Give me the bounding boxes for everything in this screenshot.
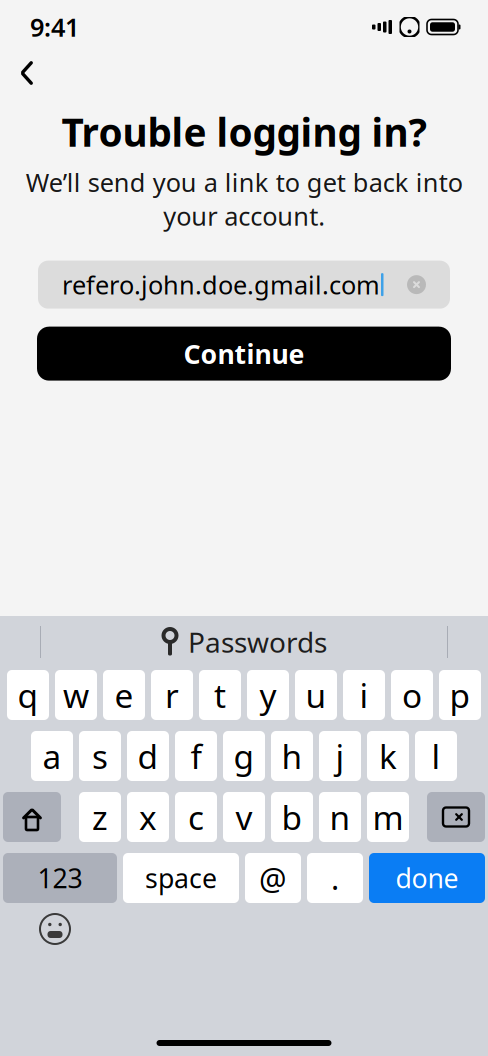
- staticText: x: [139, 795, 157, 839]
- button[interactable]: r: [151, 670, 193, 720]
- staticText: r: [165, 673, 179, 717]
- button[interactable]: i: [343, 670, 385, 720]
- staticText: q: [17, 673, 38, 717]
- button[interactable]: .: [307, 853, 363, 903]
- staticText: o: [402, 673, 422, 717]
- staticText: s: [92, 734, 108, 778]
- button[interactable]: y: [247, 670, 289, 720]
- button[interactable]: l: [415, 731, 457, 781]
- button[interactable]: b: [271, 792, 313, 842]
- staticText: l: [431, 734, 440, 778]
- staticText: .: [331, 858, 339, 898]
- staticText: t: [214, 673, 226, 717]
- button[interactable]: z: [79, 792, 121, 842]
- button[interactable]: h: [271, 731, 313, 781]
- staticText: h: [281, 734, 302, 778]
- staticText: 9:41: [30, 10, 79, 44]
- staticText: done: [395, 860, 458, 896]
- button[interactable]: d: [127, 731, 169, 781]
- button[interactable]: Passwords: [149, 622, 339, 662]
- button[interactable]: o: [391, 670, 433, 720]
- staticText: e: [114, 673, 133, 717]
- staticText: @: [259, 858, 287, 898]
- button[interactable]: Continue: [37, 327, 451, 381]
- staticText: m: [372, 795, 403, 839]
- button[interactable]: p: [439, 670, 481, 720]
- staticText: j: [335, 734, 344, 778]
- button[interactable]: n: [319, 792, 361, 842]
- staticText: i: [359, 673, 368, 717]
- staticText: k: [379, 734, 397, 778]
- staticText: Continue: [183, 336, 304, 371]
- staticText: We’ll send you a link to get back into y…: [25, 165, 462, 233]
- staticText: f: [190, 734, 201, 778]
- staticText: g: [233, 734, 254, 778]
- button[interactable]: j: [319, 731, 361, 781]
- staticText: w: [63, 673, 89, 717]
- staticText: a: [42, 734, 61, 778]
- button[interactable]: u: [295, 670, 337, 720]
- button[interactable]: Delete: [427, 792, 485, 842]
- button[interactable]: x: [127, 792, 169, 842]
- staticText: c: [188, 795, 204, 839]
- staticText: p: [449, 673, 470, 717]
- staticText: v: [235, 795, 252, 839]
- staticText: y: [259, 673, 276, 717]
- button[interactable]: m: [367, 792, 409, 842]
- staticText: 123: [37, 860, 82, 896]
- staticText: d: [137, 734, 158, 778]
- staticText: refero.john.doe.gmail.com: [62, 268, 380, 301]
- button[interactable]: s: [79, 731, 121, 781]
- button[interactable]: Emoji: [32, 906, 78, 952]
- button[interactable]: 123: [3, 853, 117, 903]
- button[interactable]: space: [123, 853, 239, 903]
- staticText: Trouble logging in?: [61, 106, 426, 157]
- staticText: n: [329, 795, 350, 839]
- staticText: u: [305, 673, 326, 717]
- button[interactable]: q: [7, 670, 49, 720]
- staticText: Passwords: [188, 623, 327, 661]
- button[interactable]: Shift: [3, 792, 61, 842]
- button[interactable]: e: [103, 670, 145, 720]
- button[interactable]: done: [369, 853, 485, 903]
- staticText: space: [145, 860, 217, 896]
- button[interactable]: g: [223, 731, 265, 781]
- button[interactable]: t: [199, 670, 241, 720]
- button[interactable]: Back: [14, 58, 40, 88]
- button[interactable]: a: [31, 731, 73, 781]
- button[interactable]: f: [175, 731, 217, 781]
- button[interactable]: k: [367, 731, 409, 781]
- staticText: z: [92, 795, 108, 839]
- staticText: b: [281, 795, 302, 839]
- button[interactable]: @: [245, 853, 301, 903]
- button[interactable]: c: [175, 792, 217, 842]
- button[interactable]: w: [55, 670, 97, 720]
- button[interactable]: v: [223, 792, 265, 842]
